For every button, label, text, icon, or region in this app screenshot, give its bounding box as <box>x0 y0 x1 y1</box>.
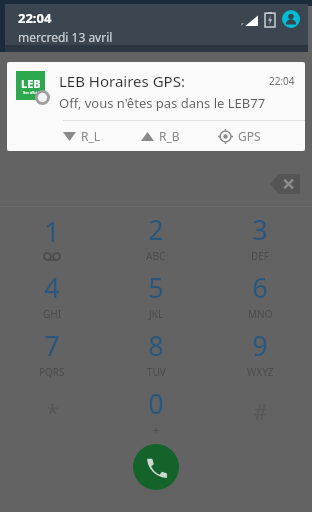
button[interactable]: Call <box>133 444 179 490</box>
staticText: 9 <box>252 327 268 364</box>
button[interactable]: 8 <box>104 324 208 382</box>
button[interactable]: 0 <box>104 382 208 440</box>
staticText: MNO <box>248 307 273 321</box>
staticText: 7 <box>44 327 60 364</box>
staticText: ABC <box>146 249 166 263</box>
staticText: PQRS <box>39 365 65 379</box>
staticText: 22:04 <box>269 74 295 88</box>
staticText: Non officiel <box>23 91 40 95</box>
staticText: LEB Horaires GPS: <box>59 71 269 91</box>
button[interactable]: 3 <box>208 207 312 266</box>
staticText: 8 <box>148 327 164 364</box>
button[interactable]: 1 <box>0 207 104 266</box>
staticText: R_L <box>81 128 101 144</box>
button[interactable]: 2 <box>104 207 208 266</box>
staticText: Off, vous n'êtes pas dans le LEB77 <box>59 94 266 112</box>
staticText: LEB <box>21 76 41 91</box>
staticText: 0 <box>148 385 164 422</box>
staticText: TUV <box>147 365 166 379</box>
staticText: 6 <box>252 269 268 306</box>
staticText: # <box>253 396 268 426</box>
staticText: 2 <box>148 211 164 248</box>
staticText: WXYZ <box>247 365 274 379</box>
staticText: JKL <box>149 307 164 321</box>
staticText: GPS <box>238 128 261 144</box>
staticText: DEF <box>251 249 270 263</box>
button[interactable]: 7 <box>0 324 104 382</box>
button[interactable]: 5 <box>104 266 208 324</box>
staticText: GHI <box>43 307 62 321</box>
staticText: R_B <box>159 128 180 144</box>
button[interactable]: R_L <box>63 121 141 151</box>
button[interactable]: 6 <box>208 266 312 324</box>
staticText: 5 <box>148 269 164 306</box>
button[interactable]: GPS <box>218 121 295 151</box>
button[interactable]: 4 <box>0 266 104 324</box>
button[interactable]: Backspace <box>268 171 302 197</box>
button[interactable]: 9 <box>208 324 312 382</box>
staticText: 4 <box>44 269 60 306</box>
staticText: mercredi 13 avril <box>18 29 113 45</box>
staticText: 22:04 <box>18 9 52 27</box>
staticText: 3 <box>252 211 268 248</box>
button[interactable]: R_B <box>141 121 218 151</box>
staticText: 1 <box>44 213 60 250</box>
button[interactable]: LEB <box>7 62 305 151</box>
staticText: + <box>153 423 159 437</box>
